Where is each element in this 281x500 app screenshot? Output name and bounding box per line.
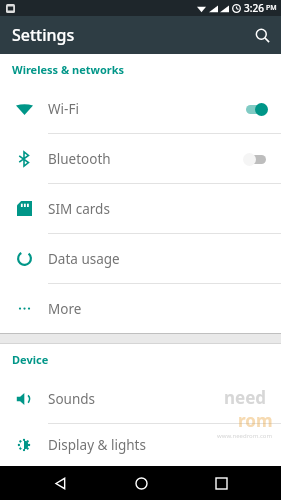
button[interactable]: SIM cards (0, 184, 281, 234)
staticText: Wi-Fi (48, 100, 243, 118)
staticText: www.needrom.com (217, 432, 273, 440)
staticText: Data usage (48, 250, 281, 268)
button[interactable]: Back (40, 466, 80, 500)
button[interactable]: Home (121, 466, 161, 500)
button[interactable]: Search (243, 16, 281, 54)
button[interactable]: Sounds (0, 374, 281, 424)
staticText: Bluetooth (48, 150, 243, 168)
button[interactable]: Display & lights (0, 424, 281, 466)
staticText: Sounds (48, 390, 281, 408)
staticText: Settings (12, 24, 75, 46)
staticText: rom (238, 409, 273, 432)
button[interactable]: Data usage (0, 234, 281, 284)
button[interactable]: Recents (201, 466, 241, 500)
button[interactable]: Bluetooth (0, 134, 281, 184)
staticText: Display & lights (48, 436, 281, 454)
button[interactable]: Wi-Fi (0, 84, 281, 134)
staticText: PM (266, 3, 277, 13)
button[interactable]: More (0, 284, 281, 333)
staticText: 3:26 (244, 1, 264, 15)
staticText: SIM cards (48, 200, 281, 218)
staticText: need (224, 386, 267, 409)
staticText: More (48, 300, 281, 318)
staticText: Device (12, 352, 49, 367)
staticText: Wireless & networks (12, 62, 125, 77)
